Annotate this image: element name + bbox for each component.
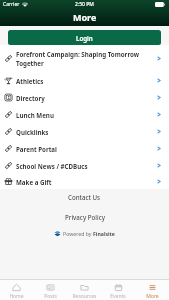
button[interactable]: Posts: [33, 280, 67, 300]
staticText: Forefront Campaign: Shaping Tomorrow Tog…: [16, 50, 154, 68]
staticText: Carrier: [3, 1, 20, 8]
staticText: School News / #CDBucs: [16, 162, 154, 170]
staticText: 2:50 PM: [75, 1, 94, 8]
staticText: More: [73, 11, 97, 23]
staticText: Login: [76, 34, 93, 42]
button[interactable]: Make a Gift: [0, 174, 169, 189]
staticText: Events: [110, 293, 126, 298]
button[interactable]: Lunch Menu: [0, 106, 169, 123]
button[interactable]: Parent Portal: [0, 140, 169, 157]
button[interactable]: Events: [101, 280, 135, 300]
other: More: [148, 283, 157, 292]
other: Resources: [80, 283, 89, 292]
button[interactable]: Home: [0, 280, 33, 300]
staticText: Directory: [16, 94, 154, 102]
other: Posts: [46, 283, 55, 292]
button[interactable]: Login: [8, 30, 161, 45]
other: Events: [114, 283, 123, 292]
staticText: Powered by: [63, 230, 93, 237]
staticText: Lunch Menu: [16, 111, 154, 119]
staticText: More: [146, 293, 159, 298]
button[interactable]: More: [135, 280, 169, 300]
button[interactable]: School News / #CDBucs: [0, 157, 169, 174]
staticText: Home: [9, 293, 24, 298]
button[interactable]: Directory: [0, 89, 169, 106]
button[interactable]: Athletics: [0, 72, 169, 89]
staticText: Parent Portal: [16, 145, 154, 153]
button[interactable]: Contact Us: [60, 190, 109, 204]
staticText: Finalsite: [93, 230, 115, 237]
staticText: Resources: [72, 293, 97, 298]
staticText: Athletics: [16, 77, 154, 85]
staticText: Contact Us: [68, 193, 101, 201]
staticText: Posts: [44, 293, 57, 298]
staticText: Privacy Policy: [65, 213, 105, 221]
button[interactable]: Privacy Policy: [57, 210, 113, 224]
button[interactable]: Forefront Campaign: Shaping Tomorrow Tog…: [0, 45, 169, 72]
button[interactable]: Powered by: [50, 228, 119, 239]
button[interactable]: Resources: [67, 280, 101, 300]
button[interactable]: Quicklinks: [0, 123, 169, 140]
staticText: Make a Gift: [16, 178, 154, 186]
staticText: Quicklinks: [16, 128, 154, 136]
other: Home: [12, 283, 21, 292]
